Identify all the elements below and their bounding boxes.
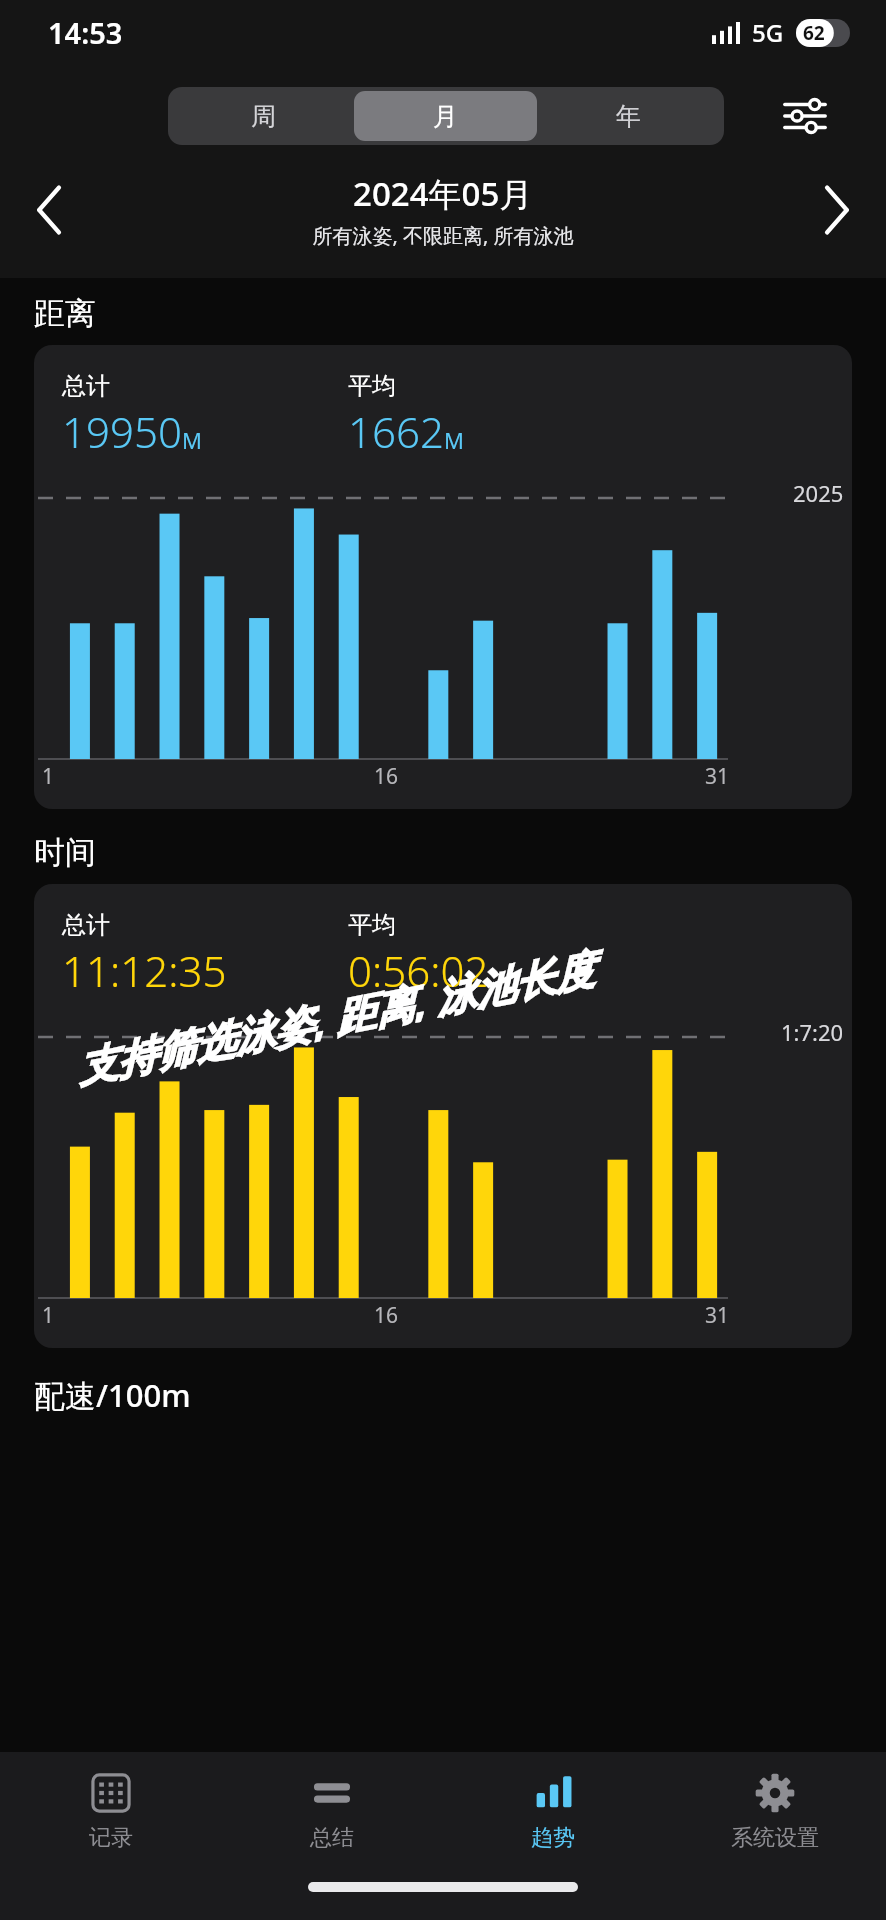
- button[interactable]: 总结: [221, 1752, 442, 1872]
- staticText: 支持筛选泳姿, 距离, 泳池长度: [72, 940, 598, 1095]
- staticText: 1: [42, 762, 55, 791]
- staticText: 1: [42, 1301, 55, 1330]
- staticText: 总计: [62, 371, 110, 401]
- staticText: 1:7:20: [781, 1017, 844, 1047]
- staticText: 总结: [310, 1824, 354, 1852]
- button[interactable]: Next period: [786, 164, 886, 256]
- staticText: M: [182, 425, 202, 455]
- staticText: 周: [251, 101, 276, 132]
- staticText: 趋势: [531, 1824, 575, 1852]
- button[interactable]: 总计: [34, 884, 852, 1348]
- staticText: 2024年05月: [353, 171, 533, 216]
- staticText: 5G: [752, 16, 784, 49]
- button[interactable]: 记录: [0, 1752, 221, 1872]
- staticText: 16: [374, 1301, 399, 1330]
- button[interactable]: 月: [354, 91, 537, 141]
- staticText: 62: [803, 20, 825, 46]
- staticText: 总计: [62, 910, 110, 940]
- staticText: 记录: [89, 1824, 133, 1852]
- button[interactable]: 趋势: [442, 1752, 664, 1872]
- staticText: 31: [705, 762, 730, 791]
- staticText: 1662: [348, 403, 444, 460]
- button[interactable]: 周: [172, 91, 354, 141]
- staticText: 19950: [62, 403, 182, 460]
- button[interactable]: Filter settings: [724, 84, 886, 148]
- staticText: 距离: [34, 294, 96, 333]
- staticText: 14:53: [48, 13, 123, 52]
- button[interactable]: 系统设置: [664, 1752, 886, 1872]
- button[interactable]: Previous period: [0, 164, 100, 256]
- staticText: 时间: [34, 833, 96, 872]
- staticText: 配速/100m: [34, 1374, 191, 1416]
- staticText: 平均: [348, 371, 396, 401]
- staticText: 31: [705, 1301, 730, 1330]
- staticText: 11:12:35: [62, 942, 227, 999]
- staticText: 16: [374, 762, 399, 791]
- button[interactable]: 年: [537, 91, 720, 141]
- staticText: 所有泳姿, 不限距离, 所有泳池: [312, 222, 574, 249]
- staticText: 月: [433, 101, 458, 132]
- staticText: M: [444, 425, 464, 455]
- button[interactable]: 总计: [34, 345, 852, 809]
- staticText: 系统设置: [731, 1824, 819, 1852]
- staticText: 0:56:02: [348, 942, 489, 999]
- staticText: 年: [616, 101, 641, 132]
- staticText: 2025: [793, 478, 844, 508]
- staticText: 平均: [348, 910, 396, 940]
